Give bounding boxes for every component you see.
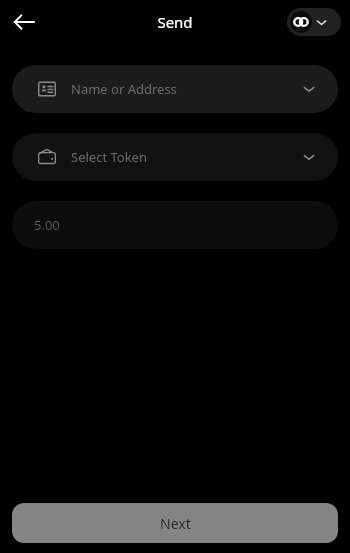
button[interactable]: 5.00 xyxy=(12,201,338,249)
staticText: Next xyxy=(160,514,191,533)
staticText: Name or Address xyxy=(71,80,177,98)
staticText: Send xyxy=(157,12,193,32)
button[interactable]: Name or Address xyxy=(12,65,338,113)
staticText: Select Token xyxy=(71,148,147,166)
button[interactable]: Back xyxy=(6,4,42,40)
button[interactable]: Select network xyxy=(287,8,341,36)
button[interactable]: Select Token xyxy=(12,133,338,181)
staticText: 5.00 xyxy=(34,216,60,234)
button[interactable]: Next xyxy=(12,503,338,543)
